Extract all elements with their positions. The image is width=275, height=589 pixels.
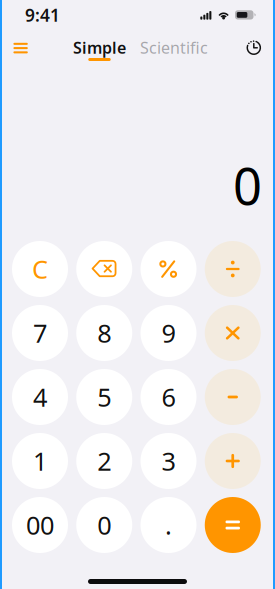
button[interactable]: 1 bbox=[12, 433, 68, 489]
button[interactable]: 2 bbox=[76, 433, 132, 489]
button[interactable]: 00 bbox=[12, 497, 68, 553]
button[interactable]: Minus bbox=[205, 369, 261, 425]
button[interactable]: Divide bbox=[205, 241, 261, 297]
staticText: 9:41 bbox=[25, 3, 60, 26]
staticText: Scientific bbox=[140, 37, 208, 58]
button[interactable]: History bbox=[232, 30, 275, 74]
button[interactable]: Equals bbox=[205, 497, 261, 553]
button[interactable]: Percent bbox=[140, 241, 196, 297]
staticText: 7 bbox=[33, 316, 47, 350]
button[interactable]: . bbox=[140, 497, 196, 553]
button[interactable]: 3 bbox=[140, 433, 196, 489]
button[interactable]: 8 bbox=[76, 305, 132, 361]
button[interactable]: 5 bbox=[76, 369, 132, 425]
staticText: 3 bbox=[161, 444, 175, 478]
button[interactable]: 9 bbox=[140, 305, 196, 361]
button[interactable]: Backspace bbox=[76, 241, 132, 297]
staticText: 5 bbox=[97, 380, 111, 414]
button[interactable]: Plus bbox=[205, 433, 261, 489]
staticText: 6 bbox=[161, 380, 175, 414]
button[interactable]: 7 bbox=[12, 305, 68, 361]
staticText: 0 bbox=[233, 152, 262, 219]
staticText: . bbox=[165, 508, 172, 542]
staticText: C bbox=[32, 252, 48, 286]
staticText: 1 bbox=[33, 444, 47, 478]
staticText: 8 bbox=[97, 316, 111, 350]
button[interactable]: Menu bbox=[0, 30, 42, 74]
button[interactable]: 0 bbox=[76, 497, 132, 553]
button[interactable]: C bbox=[12, 241, 68, 297]
staticText: 4 bbox=[33, 380, 47, 414]
staticText: 2 bbox=[97, 444, 111, 478]
staticText: 0 bbox=[97, 508, 111, 542]
staticText: 9 bbox=[161, 316, 175, 350]
staticText: 00 bbox=[26, 508, 54, 542]
button[interactable]: Multiply bbox=[205, 305, 261, 361]
button[interactable]: Scientific bbox=[133, 30, 215, 74]
button[interactable]: Simple bbox=[66, 30, 133, 74]
button[interactable]: 6 bbox=[140, 369, 196, 425]
button[interactable]: 4 bbox=[12, 369, 68, 425]
staticText: Simple bbox=[73, 37, 126, 58]
